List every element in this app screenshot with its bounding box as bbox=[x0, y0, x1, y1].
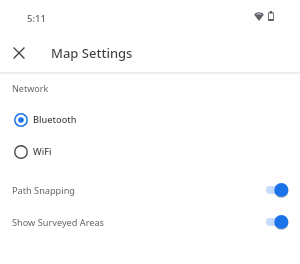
staticText: Bluetooth bbox=[33, 113, 77, 126]
staticText: Map Settings bbox=[51, 44, 133, 62]
button[interactable]: Close bbox=[7, 41, 31, 65]
staticText: 5:11 bbox=[27, 12, 46, 25]
button[interactable]: WiFi bbox=[0, 137, 300, 166]
staticText: Network bbox=[12, 82, 49, 94]
staticText: Show Surveyed Areas bbox=[12, 216, 105, 229]
button[interactable]: Bluetooth bbox=[0, 105, 300, 134]
button[interactable]: Path Snapping bbox=[0, 176, 300, 204]
staticText: WiFi bbox=[33, 145, 52, 158]
button[interactable]: Show Surveyed Areas bbox=[0, 208, 300, 236]
staticText: Path Snapping bbox=[12, 184, 75, 197]
